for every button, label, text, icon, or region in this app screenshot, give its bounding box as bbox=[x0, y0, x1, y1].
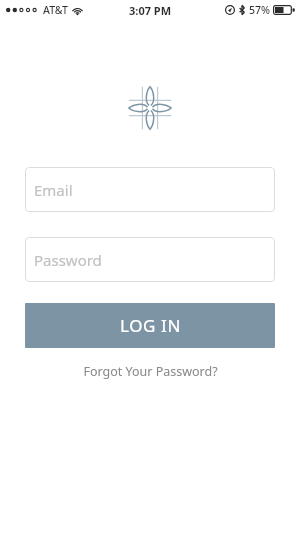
staticText: Forgot Your Password? bbox=[83, 363, 218, 380]
button[interactable]: Email bbox=[25, 167, 275, 212]
button[interactable]: Forgot Your Password? bbox=[25, 363, 275, 380]
staticText: LOG IN bbox=[120, 314, 181, 337]
staticText: 3:07 PM bbox=[129, 3, 172, 18]
button[interactable]: LOG IN bbox=[25, 303, 275, 348]
staticText: Email bbox=[34, 180, 73, 200]
button[interactable]: Password bbox=[25, 237, 275, 282]
staticText: AT&T bbox=[43, 3, 68, 17]
staticText: Password bbox=[34, 250, 102, 270]
staticText: 57% bbox=[249, 3, 270, 17]
